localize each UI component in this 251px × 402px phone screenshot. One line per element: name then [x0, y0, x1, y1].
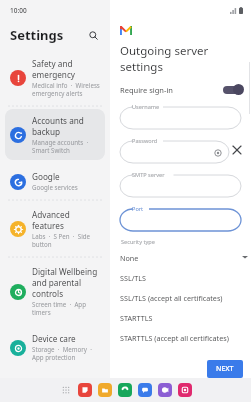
staticText: STARTTLS	[120, 313, 153, 323]
staticText: Labs · S Pen · Side button	[32, 232, 91, 248]
button[interactable]: Duo	[158, 383, 172, 397]
staticText: Google	[32, 171, 60, 182]
button[interactable]: Apps	[5, 372, 105, 402]
button[interactable]: Phone	[118, 383, 132, 397]
staticText: SMTP server	[132, 171, 165, 179]
button[interactable]: STARTTLS (accept all certificates)	[111, 328, 238, 348]
button[interactable]: SSL/TLS (accept all certificates)	[111, 288, 238, 308]
button[interactable]: SMTP server	[120, 171, 241, 197]
button[interactable]: Clear password	[229, 142, 245, 158]
staticText: Safety and emergency	[32, 58, 76, 80]
button[interactable]: NEXT	[207, 360, 243, 378]
button[interactable]: Show password	[213, 148, 222, 157]
button[interactable]: Password	[120, 137, 229, 163]
staticText: Medical info · Wireless emergency alerts	[32, 81, 100, 97]
button[interactable]: Port	[120, 205, 241, 231]
button[interactable]: Files	[98, 383, 112, 397]
staticText: NEXT	[216, 364, 234, 374]
button[interactable]: Username	[120, 103, 241, 129]
button[interactable]: Accounts and backup	[5, 109, 105, 160]
staticText: Username	[132, 103, 160, 111]
staticText: SSL/TLS (accept all certificates)	[120, 293, 223, 303]
staticText: None	[120, 253, 139, 263]
button[interactable]: Require sign-in toggle	[223, 84, 243, 95]
button[interactable]: Messages	[138, 383, 152, 397]
button[interactable]: Digital Wellbeing and parental controls	[5, 260, 105, 322]
button[interactable]: Google	[5, 165, 105, 197]
staticText: Outgoing server settings	[120, 43, 251, 75]
button[interactable]: Device care	[5, 327, 105, 367]
staticText: Google services	[32, 183, 78, 191]
staticText: Advanced features	[32, 209, 100, 231]
staticText: Storage · Memory · App protection	[32, 345, 92, 361]
staticText: Digital Wellbeing and parental controls	[32, 266, 98, 299]
button[interactable]: Instagram	[178, 383, 192, 397]
staticText: Screen time · App timers	[32, 300, 86, 316]
staticText: Device care	[32, 333, 76, 344]
staticText: Manage accounts · Smart Switch	[32, 138, 89, 154]
button[interactable]: All apps	[60, 384, 72, 396]
staticText: Default apps · App permissions	[32, 390, 89, 396]
button[interactable]: Keep	[78, 383, 92, 397]
button[interactable]: Advanced features	[5, 203, 105, 254]
staticText: Accounts and backup	[32, 115, 84, 137]
staticText: Port	[132, 205, 144, 213]
staticText: Security type	[121, 238, 155, 246]
staticText: Settings	[10, 26, 64, 44]
staticText: SSL/TLS	[120, 273, 147, 283]
staticText: 10:00	[10, 6, 27, 15]
staticText: STARTTLS (accept all certificates)	[120, 333, 229, 343]
button[interactable]: SSL/TLS	[111, 268, 238, 288]
button[interactable]: Safety and emergency	[5, 52, 105, 103]
button[interactable]: Require sign-in	[110, 84, 251, 95]
staticText: Require sign-in	[120, 85, 173, 95]
button[interactable]: Search settings	[84, 26, 102, 44]
button[interactable]: STARTTLS	[111, 308, 238, 328]
staticText: Password	[132, 137, 158, 145]
button[interactable]: None	[111, 248, 238, 268]
